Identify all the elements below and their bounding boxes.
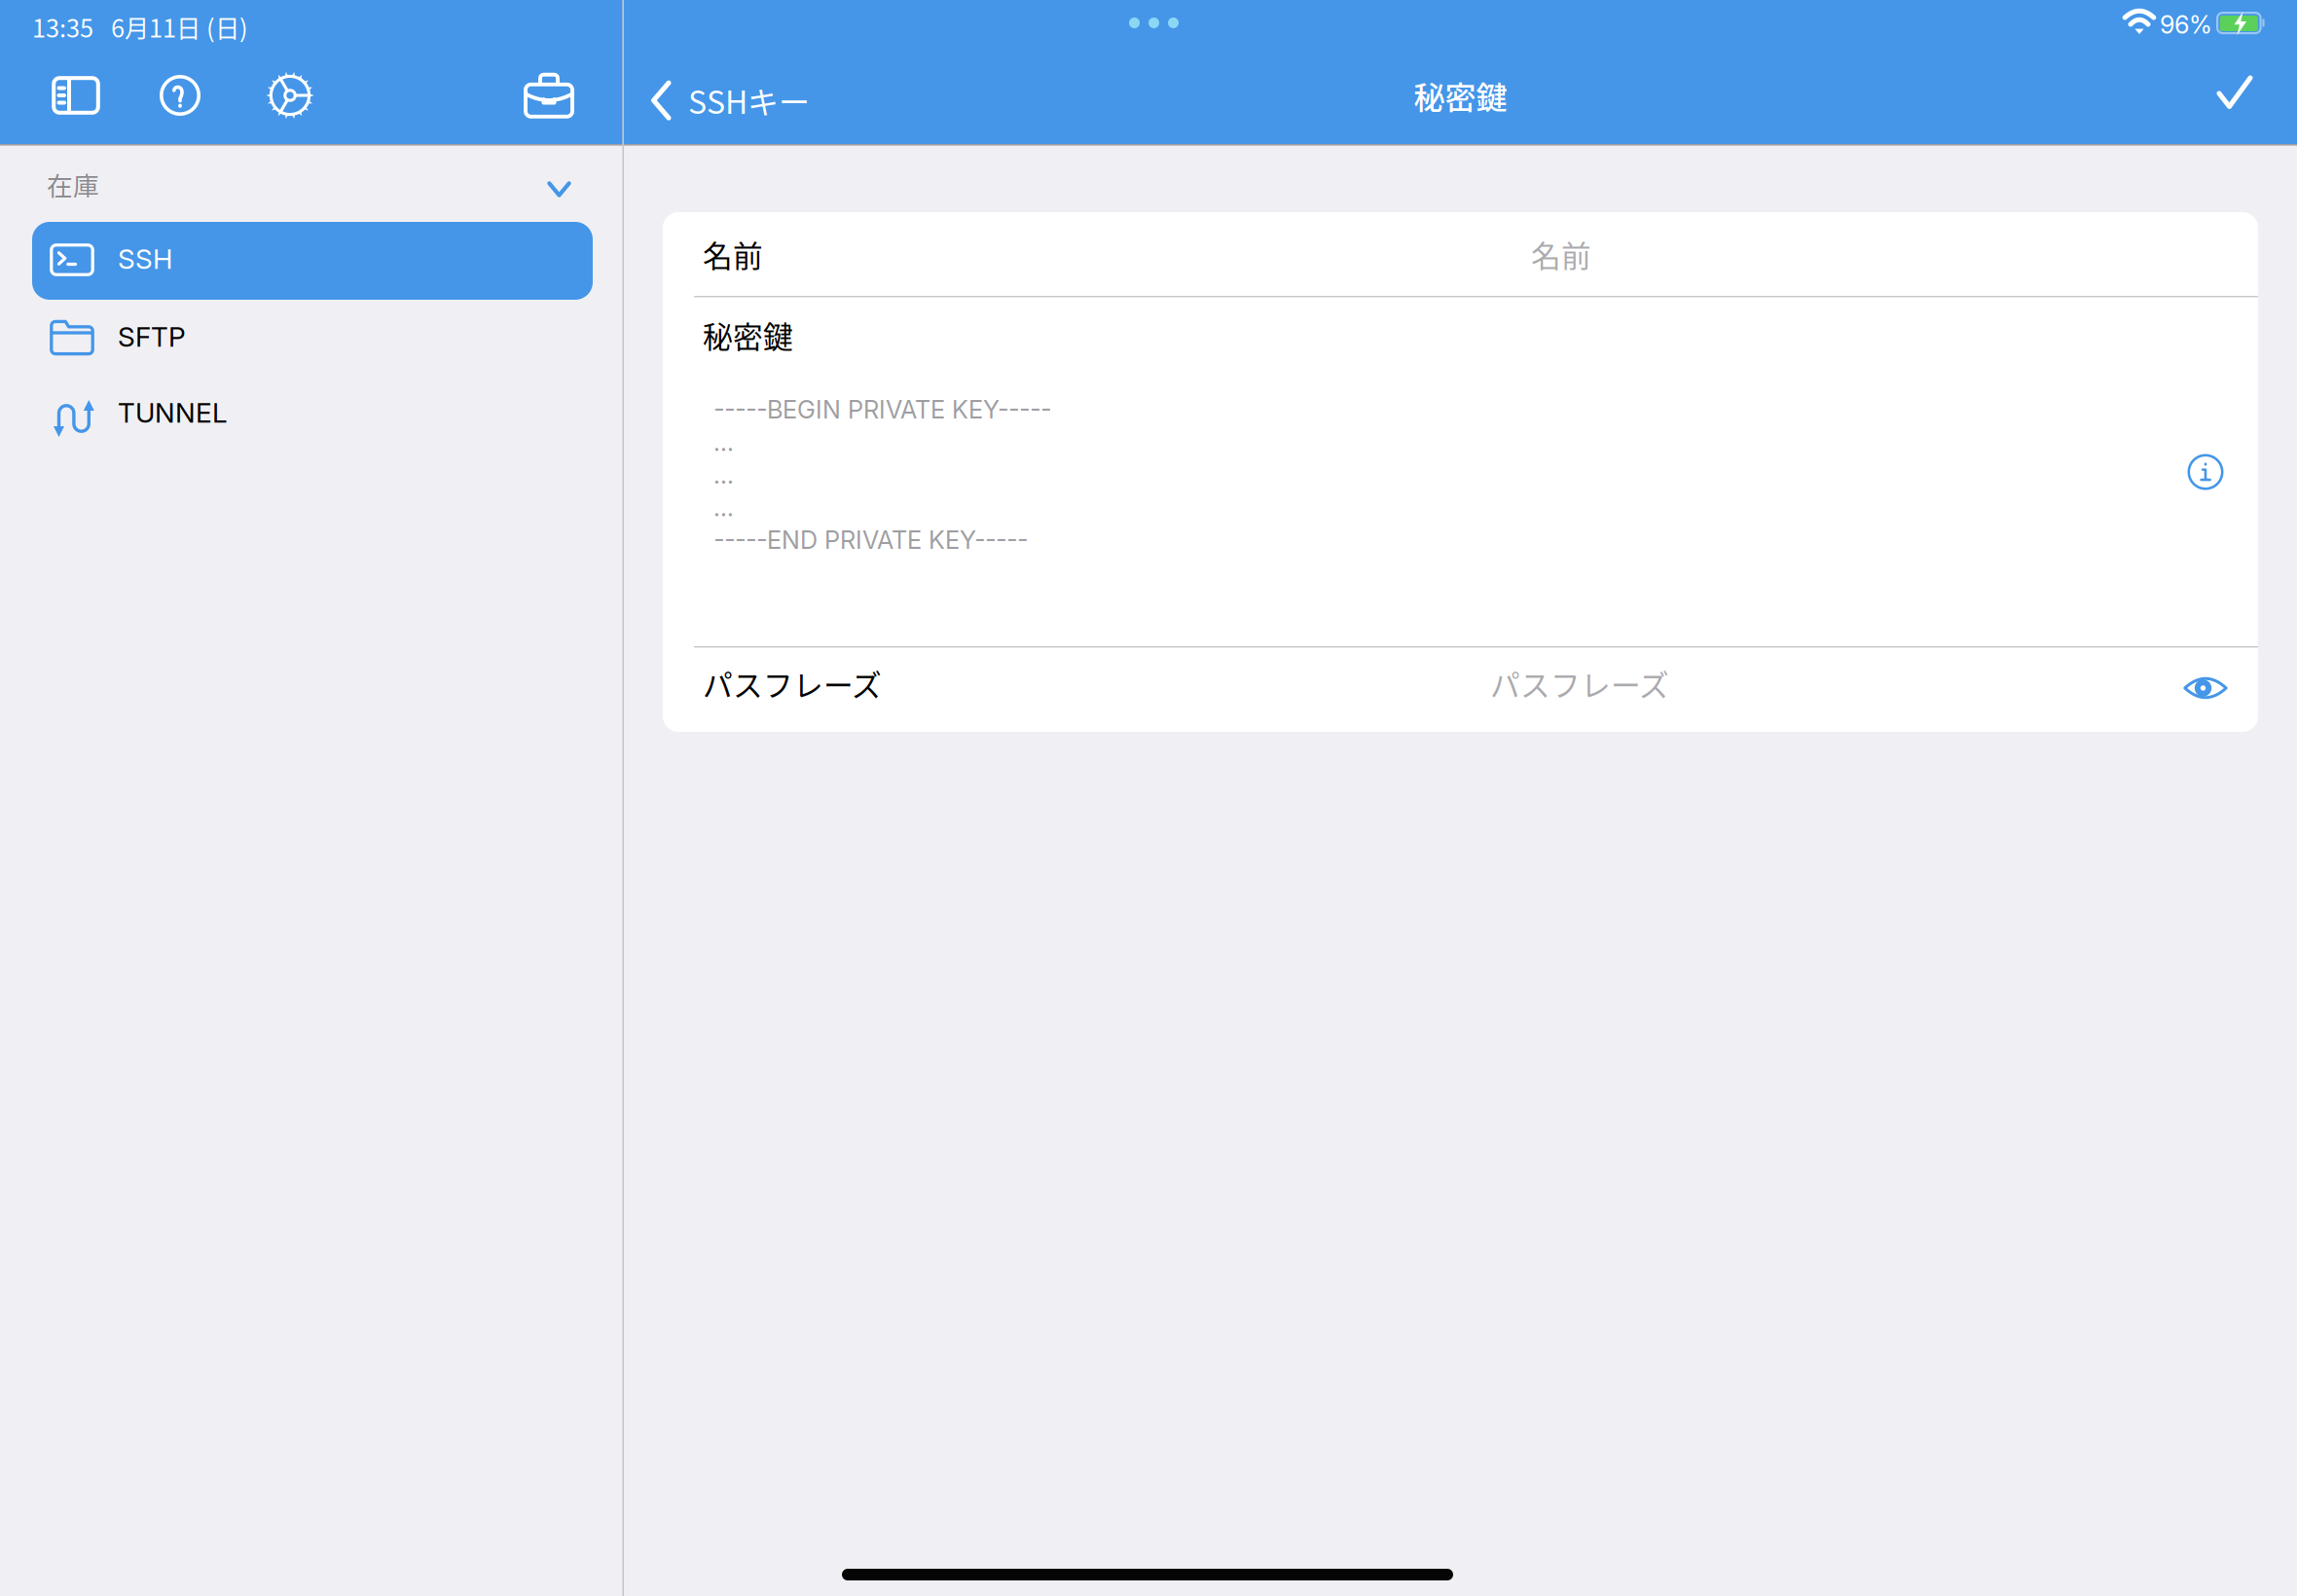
button[interactable]: Collapse section <box>536 170 582 208</box>
staticText: -----END PRIVATE KEY----- <box>713 525 1028 555</box>
button[interactable]: Toggle Sidebar <box>38 62 114 128</box>
button[interactable]: Workspace <box>510 58 588 132</box>
staticText: 13:35 6月11日 (日) <box>32 9 248 44</box>
button[interactable]: SSH <box>32 222 593 300</box>
staticText: 名前 <box>1531 233 1591 276</box>
button[interactable]: Information <box>2176 443 2235 501</box>
staticText: パスフレーズ <box>703 662 882 705</box>
staticText: 秘密鍵 <box>1414 73 1507 118</box>
button[interactable]: SSHキー <box>641 69 819 132</box>
staticText: SFTP <box>118 320 186 353</box>
staticText: 在庫 <box>47 165 99 203</box>
button[interactable]: TUNNEL <box>32 376 593 453</box>
button[interactable]: Show passphrase <box>2172 664 2239 712</box>
staticText: SSHキー <box>688 78 810 123</box>
staticText: 96% <box>2160 10 2212 40</box>
staticText: ... <box>713 427 734 457</box>
button[interactable]: Done <box>2203 61 2267 124</box>
button[interactable]: SFTP <box>32 300 593 378</box>
button[interactable]: Settings <box>252 57 328 133</box>
staticText: TUNNEL <box>118 396 228 429</box>
staticText: 秘密鍵 <box>703 313 793 357</box>
staticText: ... <box>713 492 734 522</box>
staticText: ... <box>713 460 734 490</box>
staticText: 名前 <box>703 233 763 276</box>
staticText: -----BEGIN PRIVATE KEY----- <box>713 395 1051 424</box>
staticText: パスフレーズ <box>1490 662 1669 705</box>
staticText: SSH <box>118 242 172 275</box>
button[interactable]: Help <box>146 61 214 129</box>
